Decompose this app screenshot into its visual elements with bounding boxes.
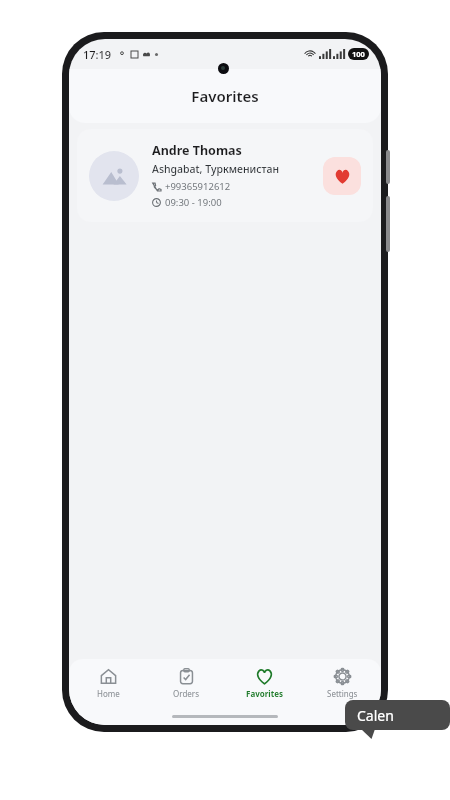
staticText: 17:19 bbox=[83, 47, 112, 62]
staticText: +99365912612 bbox=[165, 180, 231, 193]
button[interactable]: Favorites bbox=[225, 659, 303, 707]
button[interactable]: Remove from favorites bbox=[323, 157, 361, 195]
staticText: Favorites bbox=[191, 86, 259, 106]
staticText: Calen bbox=[357, 706, 394, 725]
staticText: Orders bbox=[173, 688, 199, 699]
staticText: 100 bbox=[352, 49, 365, 59]
staticText: 09:30 - 19:00 bbox=[165, 196, 222, 209]
button[interactable]: Settings bbox=[303, 659, 381, 707]
staticText: Ashgabat, Туркменистан bbox=[152, 162, 280, 176]
staticText: Andre Thomas bbox=[152, 142, 242, 159]
staticText: Favorites bbox=[246, 688, 283, 699]
button[interactable]: Home bbox=[69, 659, 147, 707]
button[interactable]: Andre Thomas bbox=[77, 129, 373, 222]
staticText: Settings bbox=[327, 688, 358, 699]
staticText: Home bbox=[97, 688, 120, 699]
button[interactable]: Orders bbox=[147, 659, 225, 707]
